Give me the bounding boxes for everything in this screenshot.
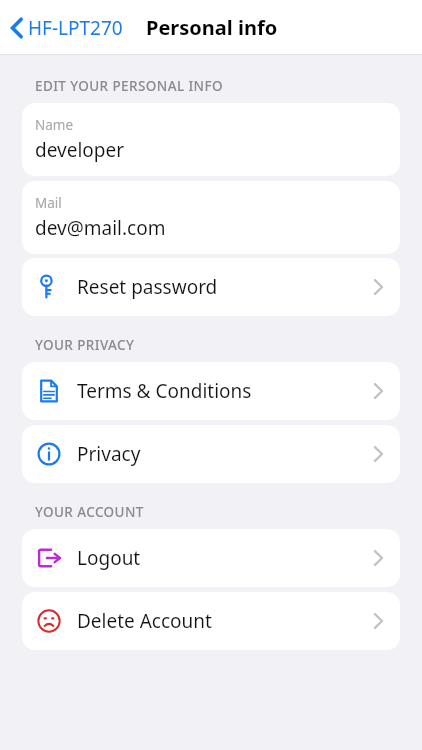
button[interactable]: HF-LPT270 [6, 11, 131, 45]
button[interactable]: Mail [22, 181, 400, 254]
staticText: YOUR ACCOUNT [35, 503, 144, 521]
staticText: Reset password [77, 274, 373, 300]
staticText: Delete Account [77, 608, 373, 634]
other: Terms and Conditions [36, 378, 62, 404]
button[interactable]: Reset password [22, 258, 400, 316]
staticText: dev@mail.com [35, 215, 166, 241]
other: Privacy [36, 441, 62, 467]
button[interactable]: Delete Account [22, 592, 400, 650]
staticText: Name [35, 116, 74, 134]
staticText: HF-LPT270 [28, 15, 123, 41]
button[interactable]: Privacy [22, 425, 400, 483]
other: Reset password [36, 274, 62, 300]
staticText: EDIT YOUR PERSONAL INFO [35, 77, 223, 95]
staticText: developer [35, 137, 125, 163]
staticText: YOUR PRIVACY [35, 336, 135, 354]
other: Delete Account [36, 608, 62, 634]
staticText: Mail [35, 194, 62, 212]
staticText: Privacy [77, 441, 373, 467]
staticText: Logout [77, 545, 373, 571]
staticText: Personal info [146, 14, 278, 41]
other: Logout [36, 545, 62, 571]
button[interactable]: Logout [22, 529, 400, 587]
button[interactable]: Terms and Conditions [22, 362, 400, 420]
button[interactable]: Name [22, 103, 400, 176]
staticText: Terms & Conditions [77, 378, 373, 404]
